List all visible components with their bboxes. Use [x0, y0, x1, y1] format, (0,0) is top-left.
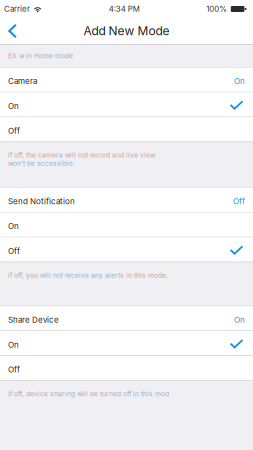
staticText: On	[8, 101, 19, 111]
staticText: On	[8, 221, 19, 231]
staticText: Off	[8, 126, 20, 136]
staticText: 100%	[206, 4, 227, 14]
staticText: Send Notification	[8, 196, 75, 206]
staticText: won't be accessible.	[8, 159, 75, 167]
button[interactable]: Back	[0, 18, 27, 44]
staticText: On	[8, 340, 19, 350]
staticText: Add New Mode	[83, 24, 169, 38]
button[interactable]: On	[0, 331, 253, 355]
button[interactable]: Send Notification	[0, 188, 253, 212]
button[interactable]: On	[0, 92, 253, 117]
button[interactable]: On	[0, 212, 253, 237]
staticText: Off	[8, 246, 20, 256]
button[interactable]: Camera	[0, 68, 253, 92]
staticText: Camera	[8, 76, 37, 86]
button[interactable]: Off	[0, 356, 253, 380]
staticText: Carrier	[4, 4, 30, 14]
staticText: On	[234, 76, 245, 86]
staticText: EX w in Home mode	[8, 52, 73, 60]
staticText: On	[234, 315, 245, 325]
button[interactable]: Off	[0, 237, 253, 262]
staticText: If off, you will not receive any alerts …	[8, 271, 168, 279]
button[interactable]: Share Device	[0, 306, 253, 331]
staticText: If off, device sharing will be turned of…	[8, 390, 169, 398]
staticText: Share Device	[8, 315, 59, 325]
staticText: 4:34 PM	[109, 4, 140, 14]
staticText: If off, the camera will not record and l…	[8, 151, 155, 159]
staticText: Off	[8, 365, 20, 374]
button[interactable]: Off	[0, 117, 253, 142]
staticText: Off	[233, 196, 245, 206]
